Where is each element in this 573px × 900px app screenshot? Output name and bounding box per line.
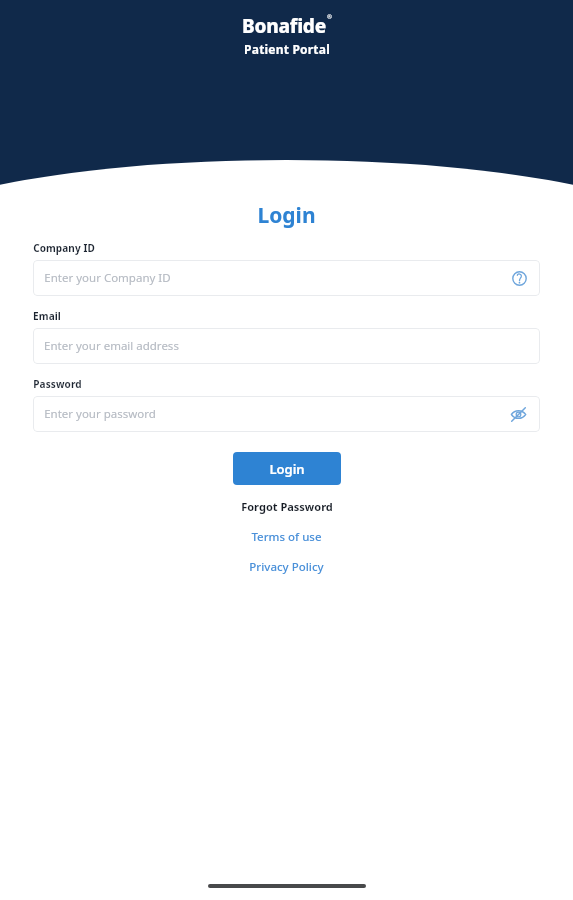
button[interactable]: Privacy Policy xyxy=(241,556,332,578)
staticText: Email xyxy=(33,309,61,323)
staticText: Forgot Password xyxy=(241,499,333,514)
staticText: Enter your email address xyxy=(44,338,179,354)
button[interactable]: Help about Company ID xyxy=(509,268,529,288)
staticText: Privacy Policy xyxy=(249,559,324,575)
staticText: Bonafide xyxy=(242,13,326,39)
button[interactable]: Forgot Password xyxy=(233,496,341,517)
staticText: Company ID xyxy=(33,241,95,255)
button[interactable]: Enter your Company ID xyxy=(33,260,540,296)
staticText: Terms of use xyxy=(251,529,322,545)
staticText: Patient Portal xyxy=(244,41,330,57)
staticText: ® xyxy=(327,13,332,21)
button[interactable]: Login xyxy=(233,452,341,485)
staticText: Enter your password xyxy=(44,406,156,422)
button[interactable]: Show password xyxy=(507,403,529,425)
staticText: Enter your Company ID xyxy=(44,270,171,286)
button[interactable]: Terms of use xyxy=(243,526,330,548)
staticText: Login xyxy=(257,201,316,230)
button[interactable]: Enter your email address xyxy=(33,328,540,364)
staticText: Login xyxy=(269,460,305,478)
staticText: Password xyxy=(33,377,82,391)
button[interactable]: Enter your password xyxy=(33,396,540,432)
